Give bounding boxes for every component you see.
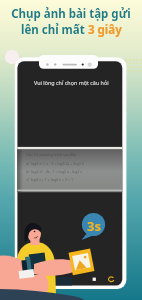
staticText: a) log3 x² + x - 3 = log3 2x + log3 2: [26, 161, 84, 166]
staticText: lên chỉ mất: [21, 22, 88, 38]
staticText: Vui lòng chỉ chọn một câu hỏi: [34, 79, 109, 86]
staticText: c) log4 x + 1 + log4 x + 3 = 1: [26, 177, 73, 182]
staticText: b) log2 x² - 4x - 1 = log2 x - log2 x: [26, 169, 83, 174]
staticText: Chụp ảnh bài tập gửi: [11, 6, 131, 22]
staticText: Câu 10: phương trình sau đây: [26, 152, 76, 157]
staticText: 3s: [87, 217, 101, 235]
staticText: 3 giây: [88, 22, 122, 38]
